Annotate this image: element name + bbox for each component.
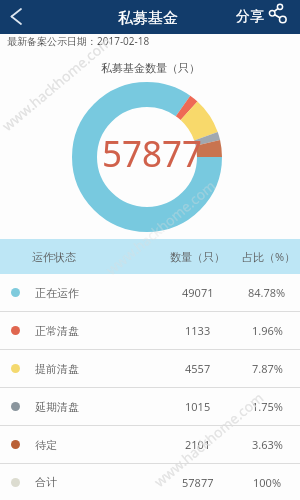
button[interactable]: 正在运作 bbox=[0, 274, 300, 312]
staticText: 正常清盘 bbox=[35, 324, 79, 338]
staticText: 84.78% bbox=[248, 285, 286, 300]
button[interactable]: 待定 bbox=[0, 426, 300, 464]
staticText: www.hackhome.com bbox=[102, 175, 220, 279]
staticText: 合计 bbox=[35, 475, 57, 489]
staticText: 延期清盘 bbox=[35, 400, 79, 414]
staticText: 1015 bbox=[185, 399, 211, 414]
staticText: www.hackhome.com bbox=[150, 387, 268, 491]
staticText: 正在运作 bbox=[35, 286, 79, 300]
staticText: 49071 bbox=[182, 285, 214, 300]
staticText: 提前清盘 bbox=[35, 362, 79, 376]
staticText: 57877 bbox=[102, 129, 202, 178]
button[interactable]: 分享 Share bbox=[236, 2, 287, 32]
staticText: 3.63% bbox=[252, 437, 283, 452]
button[interactable]: 正常清盘 bbox=[0, 312, 300, 350]
staticText: 1.75% bbox=[252, 399, 283, 414]
staticText: 4557 bbox=[185, 361, 211, 376]
staticText: 1133 bbox=[185, 323, 211, 338]
staticText: 分享 bbox=[236, 8, 264, 26]
staticText: 私募基金 bbox=[118, 9, 178, 28]
button[interactable]: 合计 bbox=[0, 464, 300, 500]
button[interactable]: Back bbox=[0, 0, 34, 34]
staticText: 占比（%） bbox=[242, 249, 296, 264]
staticText: 私募基金数量（只） bbox=[101, 61, 200, 75]
button[interactable]: 延期清盘 bbox=[0, 388, 300, 426]
staticText: www.hackhome.com bbox=[0, 31, 116, 135]
staticText: 待定 bbox=[35, 438, 57, 452]
staticText: 100% bbox=[253, 475, 282, 490]
staticText: 1.96% bbox=[252, 323, 283, 338]
staticText: 7.87% bbox=[252, 361, 283, 376]
staticText: 57877 bbox=[182, 475, 214, 490]
staticText: 数量（只） bbox=[170, 250, 225, 264]
button[interactable]: 提前清盘 bbox=[0, 350, 300, 388]
staticText: 运作状态 bbox=[32, 250, 76, 264]
staticText: 2101 bbox=[185, 437, 211, 452]
staticText: 最新备案公示日期：2017-02-18 bbox=[7, 34, 150, 48]
